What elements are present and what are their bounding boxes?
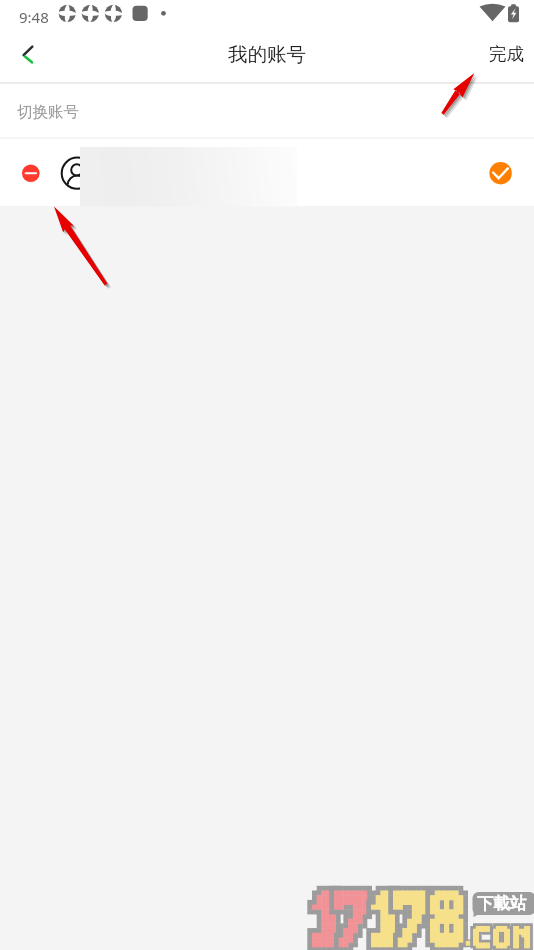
staticText: 完成 bbox=[489, 43, 524, 65]
button[interactable]: Back bbox=[0, 33, 48, 82]
staticText: 下載站 bbox=[477, 893, 527, 914]
staticText: 切换账号 bbox=[17, 102, 79, 122]
button[interactable] bbox=[0, 139, 534, 206]
staticText: 我的账号 bbox=[228, 42, 306, 67]
button[interactable]: 完成 bbox=[473, 33, 534, 82]
staticText: 9:48 bbox=[19, 7, 49, 27]
